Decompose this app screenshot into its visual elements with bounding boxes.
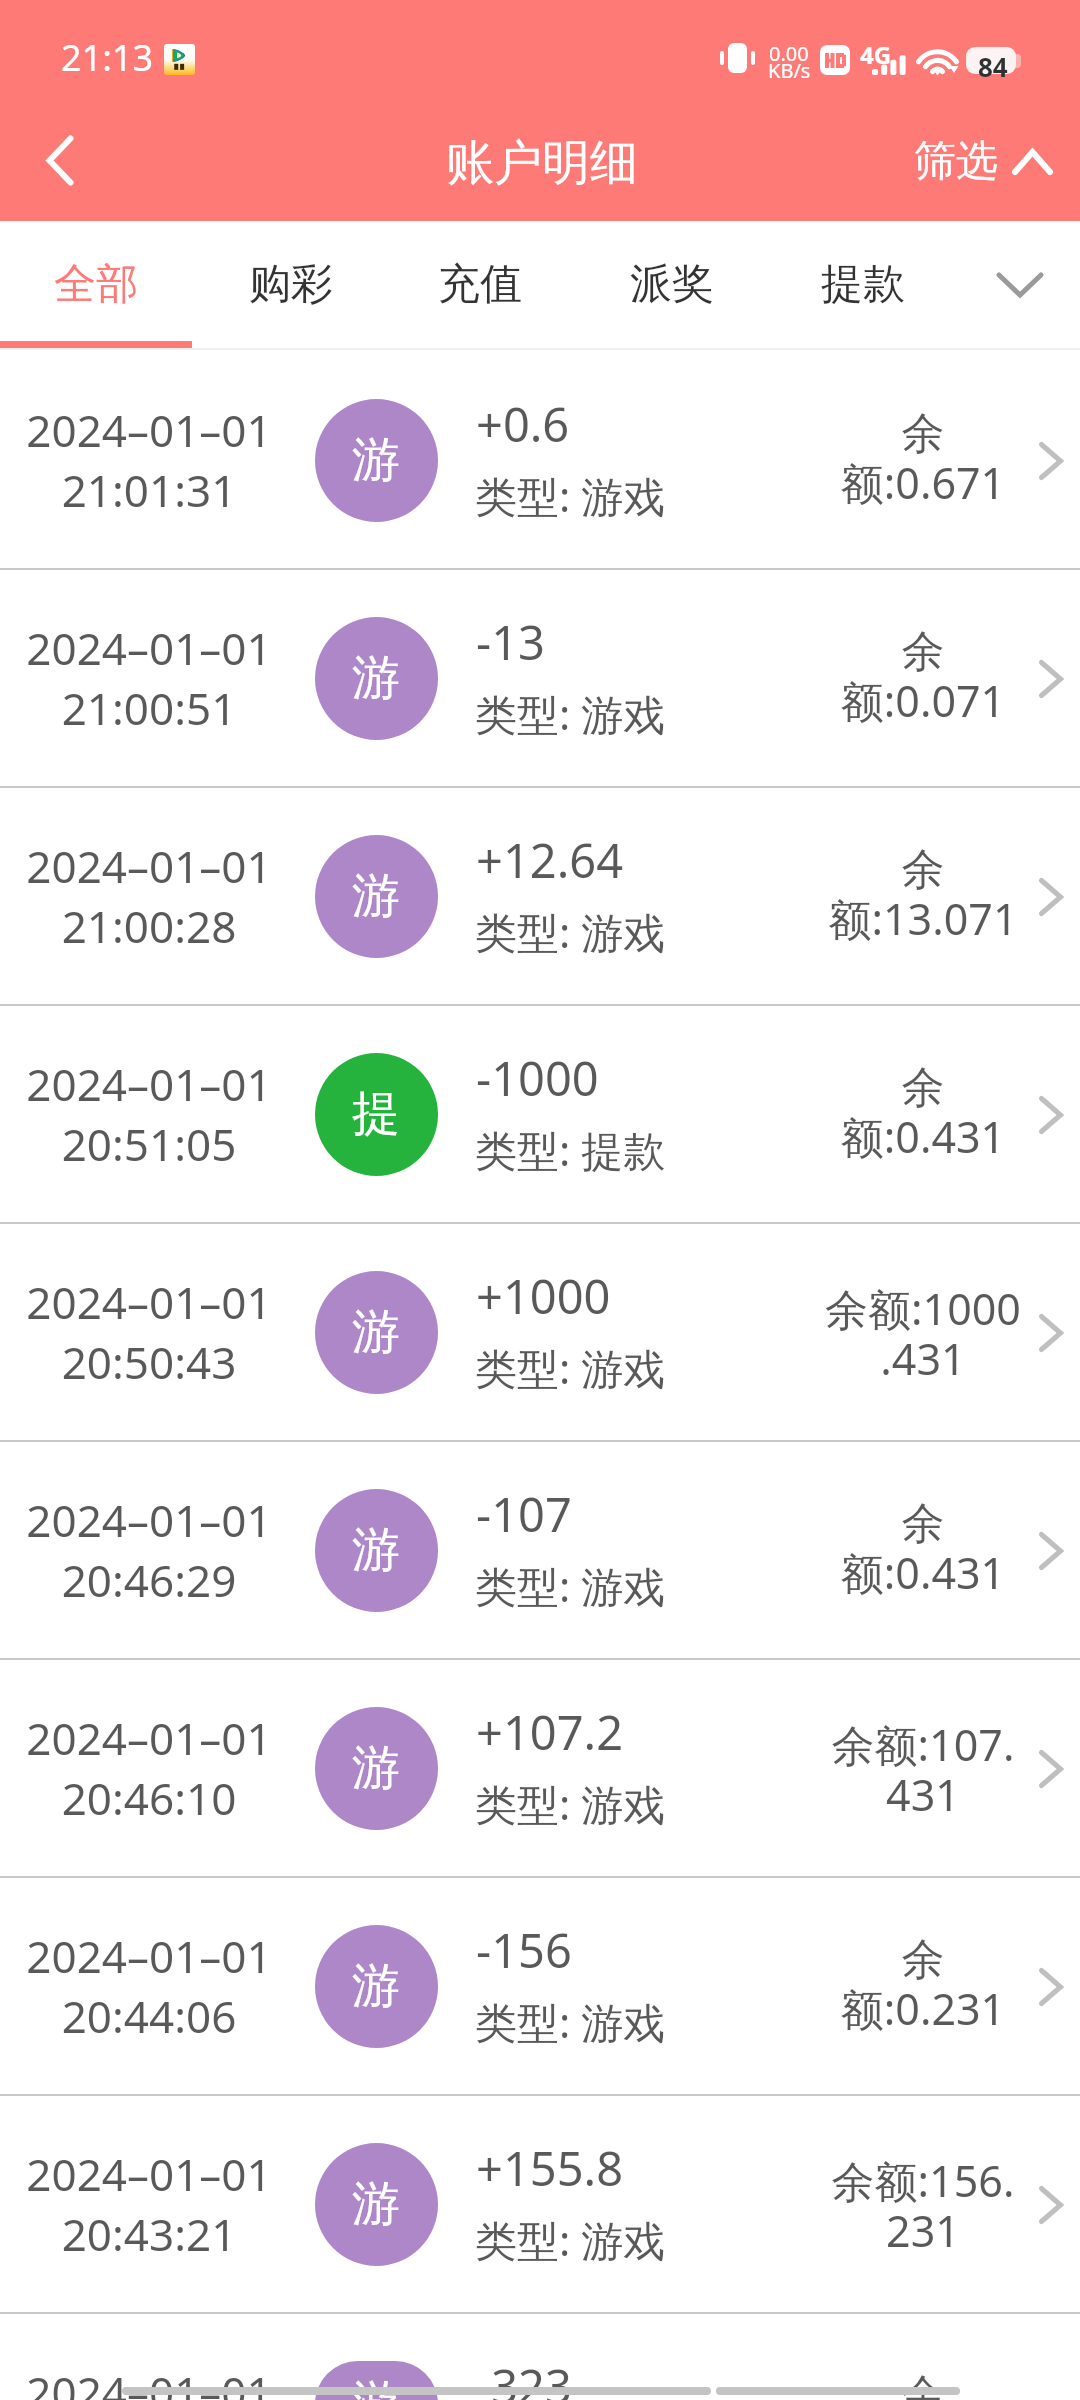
staticText: 84 bbox=[978, 49, 1008, 84]
button[interactable]: 2024–01–01 20:44:06 bbox=[0, 1878, 1080, 2094]
staticText: 2024–01–01 21:01:31 bbox=[1, 400, 297, 520]
button[interactable]: 2024–01–01 20:43:21 bbox=[0, 2096, 1080, 2312]
staticText: 2024–01–01 20:46:29 bbox=[1, 1490, 297, 1610]
staticText: 游 bbox=[352, 1956, 400, 2016]
staticText: 2024–01–01 20:50:43 bbox=[1, 1272, 297, 1392]
button[interactable]: 2024–01–01 20:50:43 bbox=[0, 1224, 1080, 1440]
staticText: 游 bbox=[352, 866, 400, 926]
staticText: 类型: 游戏 bbox=[475, 467, 666, 524]
button[interactable]: 2024–01–01 21:00:28 bbox=[0, 788, 1080, 1004]
staticText: 2024–01–01 20:51:05 bbox=[1, 1054, 297, 1174]
staticText: 21:13 bbox=[61, 33, 154, 82]
staticText: 账户明细 bbox=[446, 133, 638, 193]
staticText: 游 bbox=[352, 2373, 400, 2400]
staticText: +107.2 bbox=[476, 1700, 624, 1764]
staticText: 余 额:0.431 bbox=[822, 1061, 1024, 1165]
staticText: 余额:107. 431 bbox=[822, 1715, 1024, 1823]
staticText: 类型: 提款 bbox=[475, 1121, 666, 1178]
staticText: 游 bbox=[352, 1302, 400, 1362]
staticText: 游 bbox=[352, 430, 400, 490]
staticText: 类型: 游戏 bbox=[475, 903, 666, 960]
button[interactable]: 提款 bbox=[767, 221, 959, 352]
staticText: 余 额:0.431 bbox=[822, 2369, 1024, 2400]
staticText: 类型: 游戏 bbox=[475, 1993, 666, 2050]
staticText: 类型: 游戏 bbox=[475, 1339, 666, 1396]
staticText: +0.6 bbox=[476, 392, 570, 456]
staticText: 余 额:0.231 bbox=[822, 1933, 1024, 2037]
staticText: 游 bbox=[352, 1738, 400, 1798]
staticText: 类型: 游戏 bbox=[475, 2211, 666, 2268]
button[interactable]: 2024–01–01 20:42:50 bbox=[0, 2314, 1080, 2400]
staticText: 2024–01–01 20:43:21 bbox=[1, 2144, 297, 2264]
staticText: 2024–01–01 21:00:28 bbox=[1, 836, 297, 956]
staticText: -13 bbox=[476, 610, 545, 674]
staticText: 余 额:0.431 bbox=[822, 1497, 1024, 1601]
button[interactable]: 2024–01–01 20:46:29 bbox=[0, 1442, 1080, 1658]
staticText: 类型: 游戏 bbox=[475, 1775, 666, 1832]
staticText: 派奖 bbox=[630, 258, 714, 311]
button[interactable]: 全部 bbox=[0, 221, 192, 352]
button[interactable]: 充值 bbox=[384, 221, 576, 352]
staticText: 0.00 bbox=[769, 40, 809, 67]
staticText: -1000 bbox=[476, 1046, 599, 1110]
button[interactable]: 购彩 bbox=[195, 221, 387, 352]
staticText: 余额:156. 231 bbox=[822, 2151, 1024, 2259]
button[interactable]: 2024–01–01 20:51:05 bbox=[0, 1006, 1080, 1222]
button[interactable]: 2024–01–01 21:00:51 bbox=[0, 570, 1080, 786]
staticText: -156 bbox=[476, 1918, 572, 1982]
button[interactable]: 2024–01–01 20:46:10 bbox=[0, 1660, 1080, 1876]
staticText: +1000 bbox=[476, 1264, 611, 1328]
staticText: 2024–01–01 20:42:50 bbox=[1, 2362, 297, 2400]
staticText: 余 额:0.671 bbox=[822, 407, 1024, 511]
staticText: 余额:1000 .431 bbox=[822, 1279, 1024, 1387]
button[interactable]: 2024–01–01 21:01:31 bbox=[0, 352, 1080, 568]
staticText: 游 bbox=[352, 2174, 400, 2234]
staticText: 类型: 游戏 bbox=[475, 685, 666, 742]
button[interactable]: 派奖 bbox=[576, 221, 768, 352]
staticText: 充值 bbox=[438, 258, 522, 311]
staticText: 2024–01–01 21:00:51 bbox=[1, 618, 297, 738]
button[interactable]: Back bbox=[14, 119, 104, 199]
staticText: 余 额:13.071 bbox=[822, 843, 1024, 947]
button[interactable]: Expand filter bbox=[960, 221, 1080, 352]
staticText: +155.8 bbox=[476, 2136, 624, 2200]
staticText: 游 bbox=[352, 1520, 400, 1580]
staticText: +12.64 bbox=[476, 828, 624, 892]
staticText: 提 bbox=[352, 1084, 400, 1144]
staticText: 2024–01–01 20:44:06 bbox=[1, 1926, 297, 2046]
staticText: -323 bbox=[476, 2354, 572, 2400]
staticText: 购彩 bbox=[249, 258, 333, 311]
button[interactable]: 筛选 bbox=[914, 125, 1053, 199]
staticText: 提款 bbox=[821, 258, 905, 311]
staticText: 余 额:0.071 bbox=[822, 625, 1024, 729]
staticText: -107 bbox=[476, 1482, 572, 1546]
staticText: 2024–01–01 20:46:10 bbox=[1, 1708, 297, 1828]
staticText: 全部 bbox=[54, 258, 138, 311]
staticText: KB/s bbox=[768, 57, 811, 84]
staticText: 4G bbox=[860, 38, 892, 71]
staticText: 筛选 bbox=[914, 135, 998, 188]
staticText: 类型: 游戏 bbox=[475, 1557, 666, 1614]
staticText: 游 bbox=[352, 648, 400, 708]
